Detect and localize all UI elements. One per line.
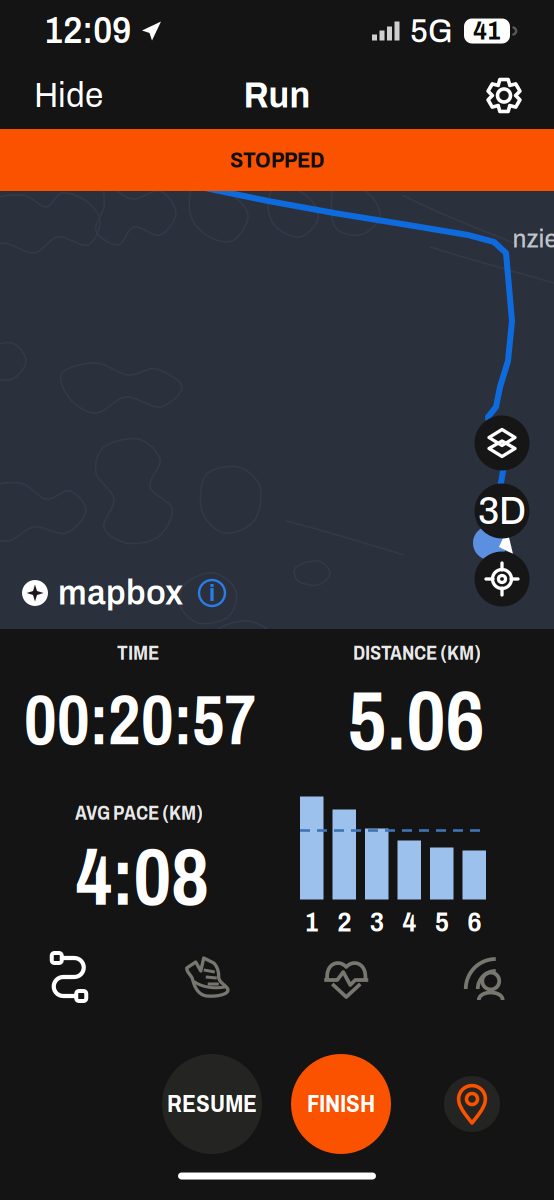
button[interactable]: Map layers bbox=[474, 415, 529, 470]
staticText: 4:08 bbox=[75, 834, 208, 921]
staticText: TIME bbox=[117, 642, 159, 664]
staticText: 2 bbox=[337, 908, 351, 937]
staticText: 41 bbox=[473, 17, 501, 45]
button[interactable]: Route bbox=[0, 951, 138, 1003]
staticText: FINISH bbox=[307, 1091, 375, 1117]
staticText: STOPPED bbox=[230, 148, 324, 172]
button[interactable]: FINISH bbox=[291, 1054, 391, 1154]
staticText: Run bbox=[243, 76, 310, 115]
staticText: AVG PACE (KM) bbox=[75, 802, 203, 824]
button[interactable]: Settings bbox=[474, 67, 534, 123]
button[interactable]: 3D view bbox=[474, 483, 529, 538]
staticText: 1 bbox=[305, 908, 319, 937]
staticText: 5.06 bbox=[347, 677, 484, 767]
button[interactable]: RESUME bbox=[162, 1054, 262, 1154]
staticText: mapbox bbox=[58, 574, 183, 612]
staticText: 12:09 bbox=[44, 11, 131, 51]
button[interactable]: Heart rate bbox=[277, 954, 415, 1000]
staticText: DISTANCE (KM) bbox=[353, 642, 481, 664]
staticText: i bbox=[209, 580, 215, 606]
button[interactable]: Hide bbox=[20, 65, 117, 126]
staticText: Hide bbox=[34, 77, 103, 114]
staticText: 4 bbox=[402, 908, 416, 937]
button[interactable]: Location bbox=[444, 1076, 500, 1132]
staticText: 5 bbox=[435, 908, 449, 937]
staticText: RESUME bbox=[167, 1091, 257, 1117]
staticText: nzie bbox=[512, 225, 554, 253]
staticText: 3 bbox=[370, 908, 384, 937]
staticText: 3D bbox=[478, 490, 526, 532]
staticText: 6 bbox=[467, 908, 481, 937]
staticText: 00:20:57 bbox=[24, 683, 256, 759]
staticText: 5G bbox=[410, 13, 453, 49]
button[interactable]: Shoes bbox=[138, 954, 277, 1000]
button[interactable]: Beacon bbox=[415, 954, 554, 1000]
button[interactable]: Recenter bbox=[474, 551, 529, 606]
